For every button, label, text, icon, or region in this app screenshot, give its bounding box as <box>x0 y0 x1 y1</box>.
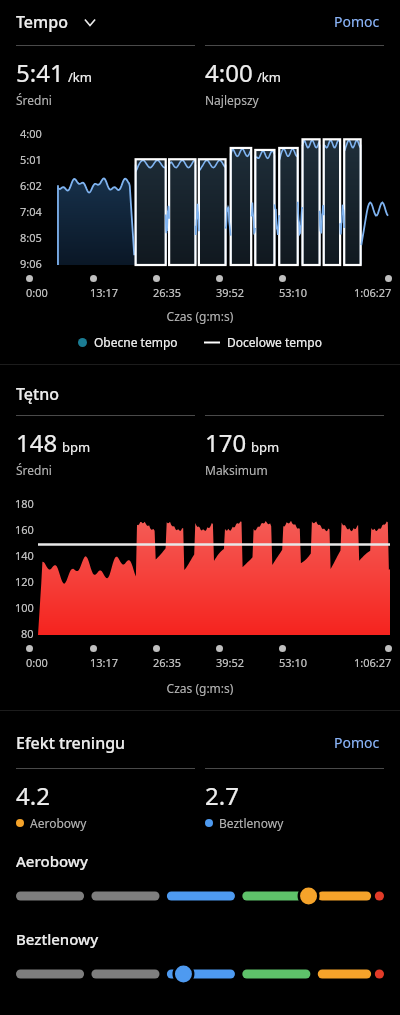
staticText: 6:02 <box>20 178 42 193</box>
staticText: Tempo <box>16 11 68 33</box>
staticText: 39:52 <box>216 655 245 670</box>
button[interactable]: 2.7 <box>205 768 384 831</box>
button[interactable]: Beztlenowy <box>0 929 400 985</box>
staticText: Średni <box>16 462 52 478</box>
staticText: 5:41 <box>16 56 64 89</box>
button[interactable]: Pomoc <box>330 8 384 35</box>
staticText: 8:05 <box>20 230 42 245</box>
staticText: Czas (g:m:s) <box>0 308 400 324</box>
staticText: 4:00 <box>205 56 253 89</box>
staticText: Średni <box>16 92 52 108</box>
staticText: Efekt treningu <box>16 732 126 754</box>
button[interactable]: Efekt treningu <box>16 732 126 754</box>
staticText: Pomoc <box>334 12 380 31</box>
button[interactable]: Aerobowy <box>0 851 400 907</box>
staticText: 13:17 <box>90 285 119 300</box>
staticText: 148 <box>16 426 58 459</box>
button[interactable]: 4.2 <box>16 768 195 831</box>
staticText: Maksimum <box>205 462 268 478</box>
staticText: 4:00 <box>20 126 42 141</box>
staticText: 39:52 <box>216 285 245 300</box>
button[interactable]: 5:41 <box>16 45 195 108</box>
staticText: Najlepszy <box>205 92 259 108</box>
staticText: Aerobowy <box>30 815 87 831</box>
staticText: 120 <box>15 574 34 589</box>
staticText: 100 <box>15 600 34 615</box>
staticText: 2.7 <box>205 779 239 812</box>
staticText: 53:10 <box>279 655 308 670</box>
other: Expand <box>82 14 98 30</box>
staticText: 7:04 <box>20 204 42 219</box>
button[interactable]: 148 <box>16 415 195 478</box>
staticText: Czas (g:m:s) <box>0 680 400 696</box>
staticText: 26:35 <box>153 655 182 670</box>
staticText: bpm <box>62 438 91 456</box>
staticText: 140 <box>15 548 34 563</box>
button[interactable]: Pomoc <box>330 729 384 756</box>
staticText: 180 <box>15 496 34 511</box>
staticText: Obecne tempo <box>94 334 178 350</box>
staticText: Docelowe tempo <box>227 334 322 350</box>
button[interactable]: Tętno <box>16 383 59 405</box>
staticText: Aerobowy <box>16 851 88 871</box>
staticText: bpm <box>251 438 280 456</box>
staticText: 1:06:27 <box>354 655 392 670</box>
staticText: 26:35 <box>153 285 182 300</box>
button[interactable]: 170 <box>205 415 384 478</box>
staticText: 5:01 <box>20 152 42 167</box>
staticText: /km <box>68 68 92 86</box>
staticText: 13:17 <box>90 655 119 670</box>
staticText: 0:00 <box>26 285 48 300</box>
button[interactable]: Tempo <box>16 11 98 33</box>
staticText: 160 <box>15 522 34 537</box>
staticText: 0:00 <box>26 655 48 670</box>
button[interactable]: 4:00 <box>205 45 384 108</box>
staticText: Pomoc <box>334 733 380 752</box>
staticText: 80 <box>21 626 34 641</box>
staticText: Beztlenowy <box>16 929 99 949</box>
staticText: 9:06 <box>20 256 42 271</box>
staticText: 1:06:27 <box>354 285 392 300</box>
staticText: Tętno <box>16 383 59 405</box>
staticText: 53:10 <box>279 285 308 300</box>
staticText: 4.2 <box>16 779 50 812</box>
staticText: 170 <box>205 426 247 459</box>
staticText: /km <box>257 68 281 86</box>
staticText: Beztlenowy <box>219 815 284 831</box>
